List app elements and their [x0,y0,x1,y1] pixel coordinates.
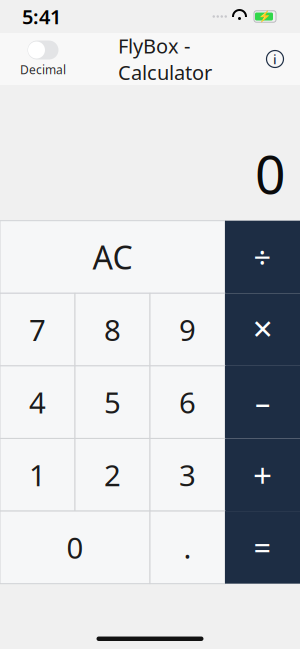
button[interactable]: Decimal [14,40,72,77]
staticText: i [273,50,277,68]
button[interactable]: + [225,438,300,511]
staticText: 9 [179,310,196,349]
staticText: 2 [104,455,121,494]
staticText: 6 [179,383,196,422]
staticText: 5 [104,383,121,422]
button[interactable]: – [225,366,300,438]
staticText: ⚡ [257,10,270,23]
button[interactable]: 1 [0,438,75,511]
button[interactable]: 5 [75,366,150,438]
button[interactable]: = [225,511,300,584]
button[interactable]: Info [258,42,292,76]
button[interactable]: ÷ [225,221,300,293]
button[interactable]: 6 [150,366,225,438]
staticText: = [253,527,271,568]
button[interactable]: AC [0,221,225,293]
staticText: 0 [66,528,83,567]
button[interactable]: 3 [150,438,225,511]
staticText: ✕ [251,314,273,345]
staticText: 7 [29,310,46,349]
button[interactable]: 2 [75,438,150,511]
staticText: 5:41 [22,3,61,30]
staticText: + [253,453,272,497]
staticText: 0 [255,138,286,209]
staticText: 8 [104,310,121,349]
staticText: FlyBox - Calculator [118,32,212,85]
staticText: – [255,382,270,422]
button[interactable]: 4 [0,366,75,438]
button[interactable]: 8 [75,293,150,366]
staticText: ÷ [253,237,271,277]
staticText: 1 [29,455,46,494]
staticText: 4 [29,383,46,422]
staticText: AC [92,236,132,278]
staticText: Decimal [20,61,66,77]
staticText: 3 [179,455,196,494]
button[interactable]: . [150,511,225,584]
button[interactable]: 7 [0,293,75,366]
button[interactable]: 0 [0,511,150,584]
staticText: . [183,528,191,567]
button[interactable]: ✕ [225,293,300,366]
button[interactable]: 9 [150,293,225,366]
